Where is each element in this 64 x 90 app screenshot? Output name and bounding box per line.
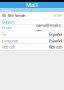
staticText: Details — [53, 14, 62, 17]
staticText: Subject — [2, 19, 14, 24]
staticText: Inbox — [2, 7, 11, 13]
staticText: From — [2, 25, 12, 30]
staticText: Español — [49, 31, 62, 37]
staticText: Mail — [26, 1, 38, 9]
staticText: Español — [49, 38, 62, 43]
staticText: To — [2, 31, 6, 37]
staticText: name@mail.com — [36, 22, 62, 33]
staticText: Refresh — [2, 44, 15, 50]
staticText: Refresh — [49, 44, 62, 50]
staticText: Mr. Smith — [8, 13, 25, 18]
staticText: Language — [2, 38, 18, 43]
